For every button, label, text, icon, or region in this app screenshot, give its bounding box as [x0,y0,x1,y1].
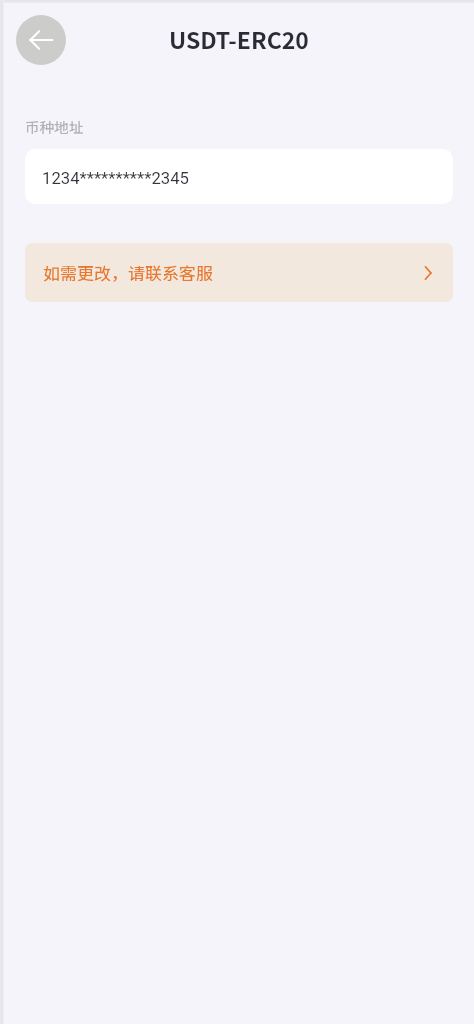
button[interactable]: 如需更改，请联系客服 [25,243,453,302]
staticText: 如需更改，请联系客服 [43,260,213,285]
staticText: 1234**********2345 [42,169,189,189]
staticText: USDT-ERC20 [169,22,309,55]
button[interactable]: 1234**********2345 [25,149,453,204]
staticText: 币种地址 [25,116,84,137]
button[interactable]: Back [16,15,66,65]
